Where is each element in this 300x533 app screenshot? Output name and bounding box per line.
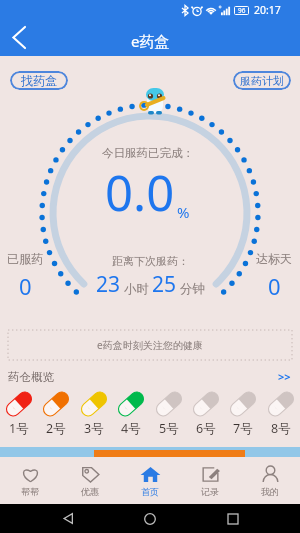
button[interactable]: Recent apps [218, 504, 248, 533]
staticText: 23 [96, 270, 121, 299]
staticText: 1号 [9, 420, 29, 437]
staticText: % [177, 202, 190, 222]
button[interactable]: 记录 [180, 457, 240, 504]
button[interactable]: Back [53, 504, 83, 533]
button[interactable]: More [275, 366, 294, 387]
staticText: 首页 [141, 486, 159, 497]
button[interactable]: Back [0, 18, 37, 56]
button[interactable]: 8号 [263, 390, 299, 435]
staticText: 5号 [159, 420, 179, 437]
staticText: 0.0 [105, 159, 175, 226]
staticText: 3号 [84, 420, 104, 437]
staticText: 分钟 [180, 281, 205, 297]
staticText: 0 [19, 271, 32, 301]
staticText: 8号 [271, 420, 291, 437]
button[interactable]: 首页 [120, 457, 180, 504]
button[interactable]: 1号 [1, 390, 37, 435]
staticText: 记录 [201, 486, 219, 497]
button[interactable]: 帮帮 [0, 457, 60, 504]
staticText: 距离下次服药： [112, 254, 189, 268]
button[interactable]: 7号 [225, 390, 261, 435]
button[interactable]: 找药盒 [10, 71, 68, 90]
staticText: e药盒 [131, 31, 170, 51]
button[interactable]: 2号 [38, 390, 74, 435]
staticText: 0 [268, 271, 281, 301]
button[interactable]: 优惠 [60, 457, 120, 504]
staticText: 帮帮 [21, 486, 39, 497]
button[interactable]: 3号 [76, 390, 112, 435]
staticText: 优惠 [81, 486, 99, 497]
staticText: 达标天 [256, 251, 292, 266]
button[interactable]: 服药计划 [233, 71, 291, 90]
staticText: 我的 [261, 486, 279, 497]
staticText: 已服药 [7, 251, 43, 266]
staticText: 2号 [46, 420, 66, 437]
button[interactable]: 5号 [151, 390, 187, 435]
staticText: e药盒时刻关注您的健康 [97, 338, 203, 352]
staticText: 今日服药已完成： [102, 146, 194, 160]
button[interactable]: 我的 [240, 457, 300, 504]
button[interactable]: 6号 [188, 390, 224, 435]
staticText: 7号 [233, 420, 253, 437]
staticText: 小时 [124, 281, 149, 297]
staticText: 药仓概览 [8, 370, 54, 384]
staticText: 找药盒 [21, 73, 57, 88]
button[interactable]: e药盒时刻关注您的健康 [8, 330, 292, 360]
staticText: 6号 [196, 420, 216, 437]
button[interactable]: 4号 [113, 390, 149, 435]
staticText: 4号 [121, 420, 141, 437]
staticText: >> [278, 369, 291, 384]
staticText: 20:17 [254, 3, 281, 17]
staticText: 96 [238, 6, 246, 15]
staticText: 25 [152, 270, 177, 299]
staticText: 服药计划 [240, 74, 284, 88]
button[interactable]: Home [135, 504, 165, 533]
